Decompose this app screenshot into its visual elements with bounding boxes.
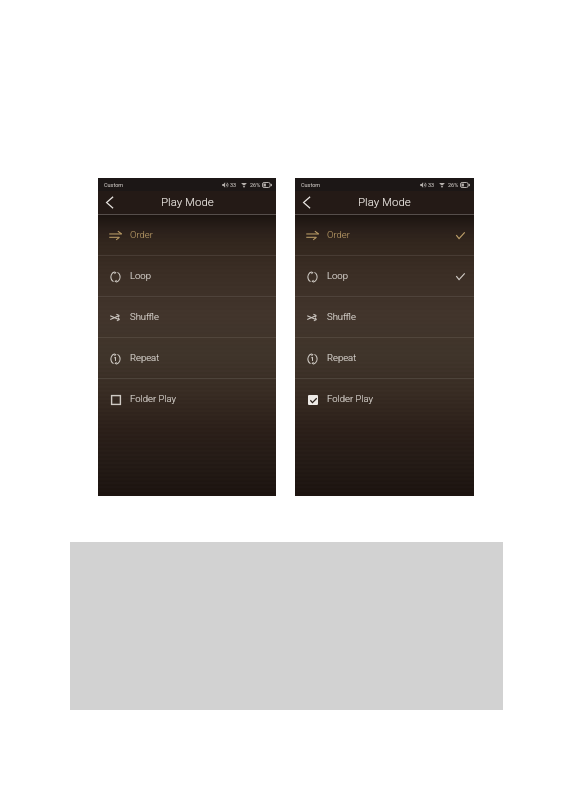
staticText: Play Mode [358,195,411,208]
staticText: Repeat [130,352,160,363]
staticText: Custom [104,182,124,188]
staticText: Folder Play [327,393,373,404]
staticText: Shuffle [130,311,159,322]
button[interactable]: Repeat [295,338,474,379]
button[interactable]: Back [295,191,318,214]
staticText: Order [327,229,350,240]
staticText: Loop [130,270,151,281]
staticText: Repeat [327,352,357,363]
button[interactable]: Loop [98,256,276,297]
staticText: 33 [428,182,435,188]
button[interactable]: Repeat [98,338,276,379]
staticText: 33 [230,182,237,188]
staticText: 26% [250,182,261,188]
staticText: Loop [327,270,348,281]
button[interactable]: Folder Play [295,379,474,420]
button[interactable]: Order [98,215,276,256]
button[interactable]: Shuffle [98,297,276,338]
button[interactable]: Order [295,215,474,256]
staticText: Custom [301,182,321,188]
staticText: 26% [448,182,459,188]
staticText: Shuffle [327,311,356,322]
button[interactable]: Loop [295,256,474,297]
staticText: Folder Play [130,393,176,404]
button[interactable]: Back [98,191,121,214]
button[interactable]: Folder Play [98,379,276,420]
staticText: Order [130,229,153,240]
staticText: Play Mode [161,195,214,208]
button[interactable]: Shuffle [295,297,474,338]
